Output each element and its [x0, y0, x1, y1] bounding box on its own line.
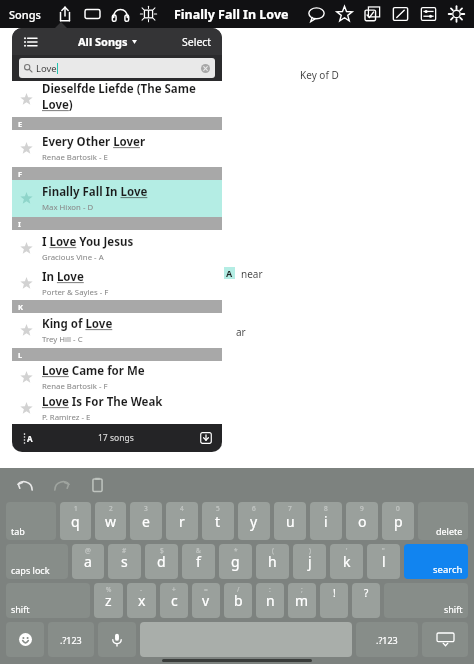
button[interactable]: Dictation: [98, 622, 136, 657]
button[interactable]: Annotate: [386, 1, 414, 27]
button[interactable]: Undo: [10, 472, 40, 498]
button[interactable]: 0: [382, 502, 414, 540]
staticText: y: [250, 512, 258, 531]
staticText: In Love: [42, 269, 84, 285]
staticText: z: [105, 591, 112, 610]
button[interactable]: /: [224, 583, 252, 618]
button[interactable]: 9: [346, 502, 378, 540]
button[interactable]: Emoji: [6, 622, 44, 657]
staticText: i: [324, 512, 328, 531]
button[interactable]: Sort: [20, 430, 36, 446]
button[interactable]: Settings: [442, 1, 470, 27]
button[interactable]: 8: [310, 502, 342, 540]
staticText: Songs: [9, 7, 41, 22]
button[interactable]: #: [108, 544, 141, 579]
button[interactable]: Select: [176, 31, 218, 53]
button[interactable]: shift: [384, 583, 468, 618]
button[interactable]: .?123: [48, 622, 94, 657]
staticText: All Songs: [78, 34, 128, 49]
button[interactable]: ": [367, 544, 400, 579]
button[interactable]: =: [192, 583, 220, 618]
button[interactable]: Songs: [6, 3, 44, 26]
button[interactable]: Love: [19, 58, 215, 78]
staticText: &: [196, 546, 201, 555]
button[interactable]: 6: [238, 502, 270, 540]
staticText: c: [171, 591, 178, 610]
button[interactable]: $: [145, 544, 178, 579]
button[interactable]: shift: [6, 583, 90, 618]
staticText: *: [234, 546, 238, 555]
button[interactable]: ;: [288, 583, 316, 618]
button[interactable]: Hide keyboard: [422, 622, 468, 657]
staticText: f: [196, 552, 201, 571]
button[interactable]: (: [256, 544, 289, 579]
staticText: .?123: [376, 634, 398, 646]
button[interactable]: -: [127, 583, 156, 618]
button[interactable]: In Love: [12, 267, 222, 300]
button[interactable]: tab: [6, 502, 56, 540]
button[interactable]: All Songs: [74, 31, 141, 52]
button[interactable]: Dieselfde Liefde (The Same Love): [12, 81, 222, 117]
button[interactable]: Redo: [46, 472, 76, 498]
staticText: $: [160, 546, 164, 555]
staticText: 6: [252, 504, 256, 513]
button[interactable]: 3: [130, 502, 162, 540]
staticText: m: [295, 591, 309, 610]
button[interactable]: Menu: [20, 32, 40, 52]
staticText: g: [231, 552, 240, 571]
button[interactable]: Present: [78, 1, 106, 27]
button[interactable]: Clear search: [201, 64, 210, 73]
staticText: %: [106, 585, 112, 594]
button[interactable]: Stage display: [134, 1, 162, 27]
staticText: shift: [444, 603, 463, 615]
staticText: Renae Bartosik - E: [42, 152, 108, 163]
button[interactable]: 4: [166, 502, 198, 540]
staticText: x: [138, 591, 146, 610]
button[interactable]: Love Rock: [12, 424, 222, 452]
button[interactable]: Favorite: [330, 1, 358, 27]
button[interactable]: :: [256, 583, 284, 618]
button[interactable]: I Love You Jesus: [12, 230, 222, 267]
button[interactable]: Share: [52, 1, 78, 27]
button[interactable]: 2: [95, 502, 126, 540]
button[interactable]: ?: [352, 583, 380, 618]
staticText: l: [382, 552, 386, 571]
staticText: Select: [182, 35, 212, 49]
staticText: .?123: [60, 634, 82, 646]
staticText: 4: [180, 504, 184, 513]
button[interactable]: Transpose: [414, 1, 442, 27]
staticText: Love Is For The Weak: [42, 394, 163, 410]
button[interactable]: Paste: [82, 472, 112, 498]
button[interactable]: 1: [60, 502, 91, 540]
button[interactable]: ': [330, 544, 363, 579]
button[interactable]: ): [293, 544, 326, 579]
button[interactable]: !: [320, 583, 348, 618]
staticText: ": [382, 546, 385, 555]
button[interactable]: Select: [358, 1, 386, 27]
staticText: +: [172, 585, 176, 594]
staticText: -: [140, 585, 143, 594]
button[interactable]: Download: [196, 428, 216, 448]
button[interactable]: Finally Fall In Love: [12, 180, 222, 217]
button[interactable]: caps lock: [6, 544, 68, 579]
button[interactable]: search: [404, 544, 468, 579]
button[interactable]: @: [72, 544, 104, 579]
button[interactable]: .?123: [356, 622, 418, 657]
button[interactable]: 5: [202, 502, 234, 540]
staticText: Trey Hill - C: [42, 334, 83, 345]
button[interactable]: delete: [418, 502, 468, 540]
button[interactable]: Love Came for Me: [12, 361, 222, 393]
button[interactable]: &: [182, 544, 215, 579]
button[interactable]: Audio: [106, 1, 134, 27]
button[interactable]: Every Other Lover: [12, 130, 222, 167]
staticText: 1: [74, 504, 78, 513]
button[interactable]: 7: [274, 502, 306, 540]
button[interactable]: King of Love: [12, 313, 222, 348]
staticText: Max Hixon - D: [42, 202, 94, 213]
button[interactable]: *: [219, 544, 252, 579]
button[interactable]: Love Is For The Weak: [12, 393, 222, 424]
button[interactable]: Comments: [302, 1, 330, 27]
button[interactable]: %: [94, 583, 123, 618]
button[interactable]: +: [160, 583, 188, 618]
